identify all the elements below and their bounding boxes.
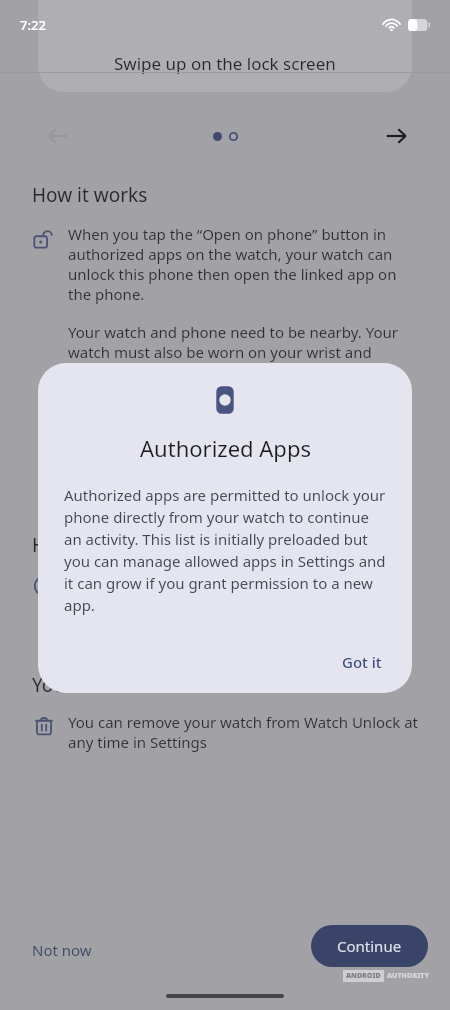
staticText: AUTHORITY	[387, 971, 430, 981]
staticText: ANDROID	[346, 971, 381, 981]
staticText: Got it	[342, 652, 382, 672]
staticText: Continue	[337, 936, 402, 956]
staticText: Authorized Apps	[140, 433, 311, 463]
staticText: Not now	[32, 940, 92, 960]
button[interactable]: Got it	[330, 643, 394, 681]
staticText: How it protects you	[32, 532, 205, 558]
staticText: Swipe up on the lock screen	[114, 52, 336, 75]
staticText: Authorized apps are permitted to unlock …	[64, 485, 386, 616]
button[interactable]: Not now	[26, 932, 98, 968]
staticText: You can remove your watch from Watch Unl…	[68, 712, 422, 752]
button[interactable]: Next	[376, 116, 416, 156]
staticText: Only authorized apps on watch can unlock…	[68, 572, 422, 612]
staticText: When you tap the “Open on phone” button …	[68, 224, 422, 304]
staticText: 7:22	[20, 16, 46, 34]
button[interactable]: Continue	[311, 925, 428, 967]
staticText: Your watch and phone need to be nearby. …	[68, 322, 422, 382]
staticText: You're in control	[32, 672, 177, 698]
staticText: How it works	[32, 182, 148, 208]
